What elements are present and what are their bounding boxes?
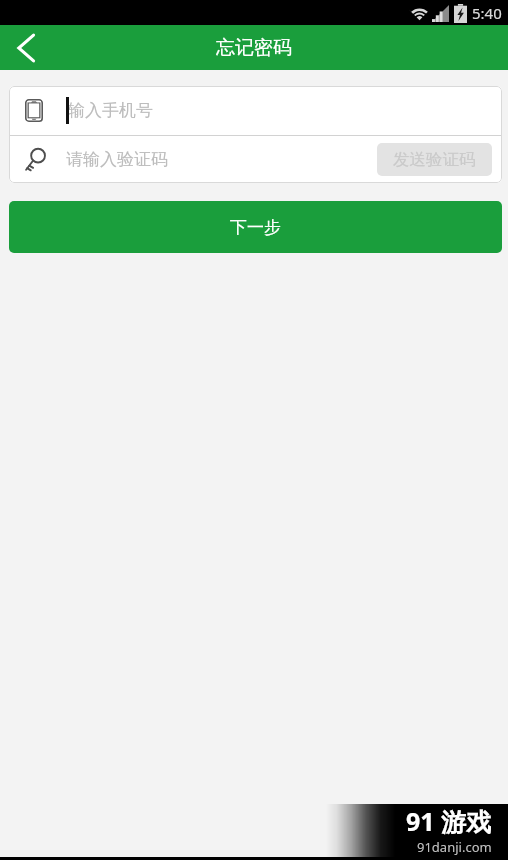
staticText: 下一步 [230,217,281,238]
staticText: 91 游戏 [406,804,492,838]
staticText: 请输入验证码 [66,149,168,170]
button[interactable]: 发送验证码 [377,143,492,176]
button[interactable]: 下一步 [9,201,502,253]
staticText: 5:40 [472,3,502,23]
button[interactable]: 输入手机号 [9,86,502,135]
button[interactable]: Back [0,25,52,70]
staticText: 91danji.com [417,838,492,856]
staticText: 输入手机号 [68,100,153,121]
staticText: 发送验证码 [393,149,476,170]
staticText: 忘记密码 [216,36,292,60]
